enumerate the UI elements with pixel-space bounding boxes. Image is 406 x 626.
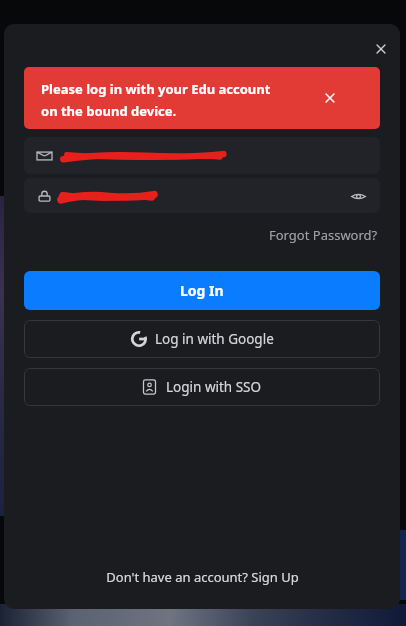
other: SSO badge: [142, 379, 157, 395]
other: Google: [131, 331, 147, 347]
staticText: Don't have an account? Sign Up: [106, 568, 299, 586]
button[interactable]: Don't have an account? Sign Up: [100, 564, 305, 590]
button[interactable]: Log In: [24, 271, 380, 310]
button[interactable]: Close: [366, 34, 396, 64]
button[interactable]: SSO badge: [24, 368, 380, 406]
staticText: Log In: [180, 281, 224, 300]
staticText: Please log in with your Edu account on t…: [41, 80, 281, 120]
button[interactable]: Forgot Password?: [267, 224, 380, 246]
staticText: Log in with Google: [155, 330, 274, 348]
button[interactable]: Dismiss message: [317, 85, 343, 111]
button[interactable]: Show password: [348, 186, 368, 206]
button[interactable]: [24, 137, 380, 174]
button[interactable]: Show password: [24, 178, 380, 213]
staticText: Forgot Password?: [269, 226, 378, 244]
staticText: Login with SSO: [166, 378, 262, 396]
button[interactable]: Google: [24, 320, 380, 358]
